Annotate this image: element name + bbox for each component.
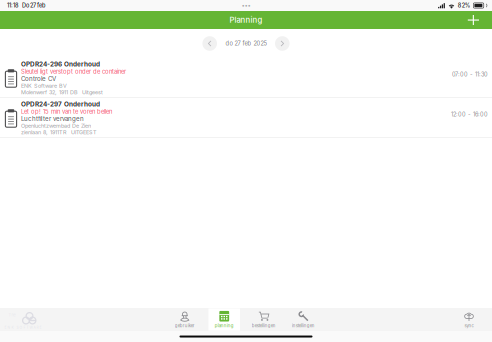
staticText: instellingen (292, 323, 315, 328)
staticText: Openluchtzwembad De Zien (21, 122, 91, 129)
staticText: 12:00 - 16:00 (451, 111, 488, 118)
button[interactable]: OPDR24-297 Onderhoud (0, 98, 492, 138)
staticText: sync (464, 323, 473, 328)
staticText: 82% (458, 2, 471, 9)
button[interactable]: Vorige dag (202, 36, 217, 51)
button[interactable]: planning (208, 308, 240, 330)
staticText: Luchtfilter vervangen (21, 115, 84, 122)
staticText: do 27 feb 2025 (225, 40, 266, 47)
staticText: 11:18 Do 27 feb (7, 2, 45, 9)
staticText: Let op! 15 min van te voren bellen (21, 108, 112, 115)
staticText: OPDR24-297 Onderhoud (21, 100, 100, 108)
staticText: Molenwerf 32, 1911 DB Uitgeest (21, 89, 103, 96)
staticText: 07:00 - 11:30 (452, 71, 488, 78)
button[interactable]: OPDR24-296 Onderhoud (0, 58, 492, 98)
staticText: Planning (229, 15, 262, 25)
button[interactable]: gebruiker (169, 308, 200, 330)
button[interactable]: sync (453, 308, 485, 330)
button[interactable]: instellingen (287, 308, 319, 330)
staticText: planning (215, 323, 234, 328)
staticText: Sleutel ligt verstopt onder de container (21, 68, 126, 75)
button[interactable]: Volgende dag (275, 36, 290, 51)
staticText: Controle CV (21, 75, 56, 82)
staticText: bestellingen (252, 323, 276, 328)
button[interactable]: bestellingen (248, 308, 279, 330)
staticText: ••• (241, 2, 250, 9)
staticText: ENK Software BV (21, 82, 67, 89)
staticText: OPDR24-296 Onderhoud (21, 60, 100, 68)
button[interactable]: Nieuwe opdracht toevoegen (462, 11, 485, 29)
staticText: gebruiker (175, 323, 195, 328)
staticText: zienlaan 8, 1911TR UITGEEST (21, 129, 97, 136)
